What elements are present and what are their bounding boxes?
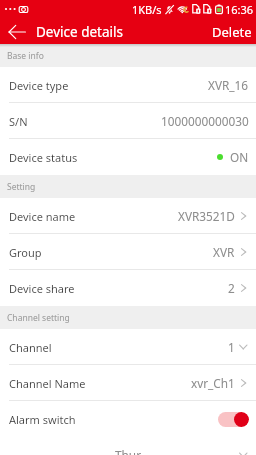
- staticText: Device type: [9, 78, 69, 93]
- button[interactable]: Device type: [0, 67, 256, 103]
- button[interactable]: Device status: [0, 139, 256, 175]
- staticText: Device status: [9, 150, 78, 165]
- staticText: Device share: [9, 281, 75, 296]
- button[interactable]: Channel: [0, 329, 256, 365]
- staticText: Channel Name: [9, 376, 86, 391]
- staticText: 2: [228, 280, 235, 296]
- staticText: Alarm switch: [9, 412, 76, 427]
- button[interactable]: Device share: [0, 270, 256, 306]
- button[interactable]: Delete: [204, 18, 256, 44]
- staticText: XVR3521D: [178, 208, 235, 224]
- button[interactable]: Group: [0, 234, 256, 270]
- staticText: S/N: [9, 114, 28, 129]
- staticText: Base info: [7, 50, 44, 62]
- button[interactable]: Device name: [0, 198, 256, 234]
- staticText: Delete: [212, 23, 252, 41]
- staticText: 16:36: [225, 2, 254, 17]
- button[interactable]: Alarm switch: [218, 412, 249, 427]
- button[interactable]: Alarm switch: [0, 401, 256, 437]
- staticText: Setting: [7, 181, 36, 193]
- staticText: ON: [230, 149, 249, 165]
- staticText: Device details: [36, 23, 123, 41]
- button[interactable]: S/N: [0, 103, 256, 139]
- button[interactable]: Channel Name: [0, 365, 256, 401]
- staticText: xvr_Ch1: [191, 375, 235, 391]
- staticText: 1: [228, 339, 235, 355]
- staticText: Channel setting: [7, 312, 70, 324]
- staticText: Device name: [9, 209, 76, 224]
- staticText: 1KB/s: [132, 2, 162, 17]
- staticText: Channel: [9, 340, 52, 355]
- staticText: Group: [9, 245, 42, 260]
- staticText: 1000000000030: [161, 113, 249, 129]
- staticText: XVR: [213, 244, 235, 260]
- staticText: Thur: [115, 447, 142, 455]
- staticText: XVR_16: [208, 77, 249, 93]
- button[interactable]: Back: [5, 18, 29, 44]
- button[interactable]: Thur: [0, 437, 256, 455]
